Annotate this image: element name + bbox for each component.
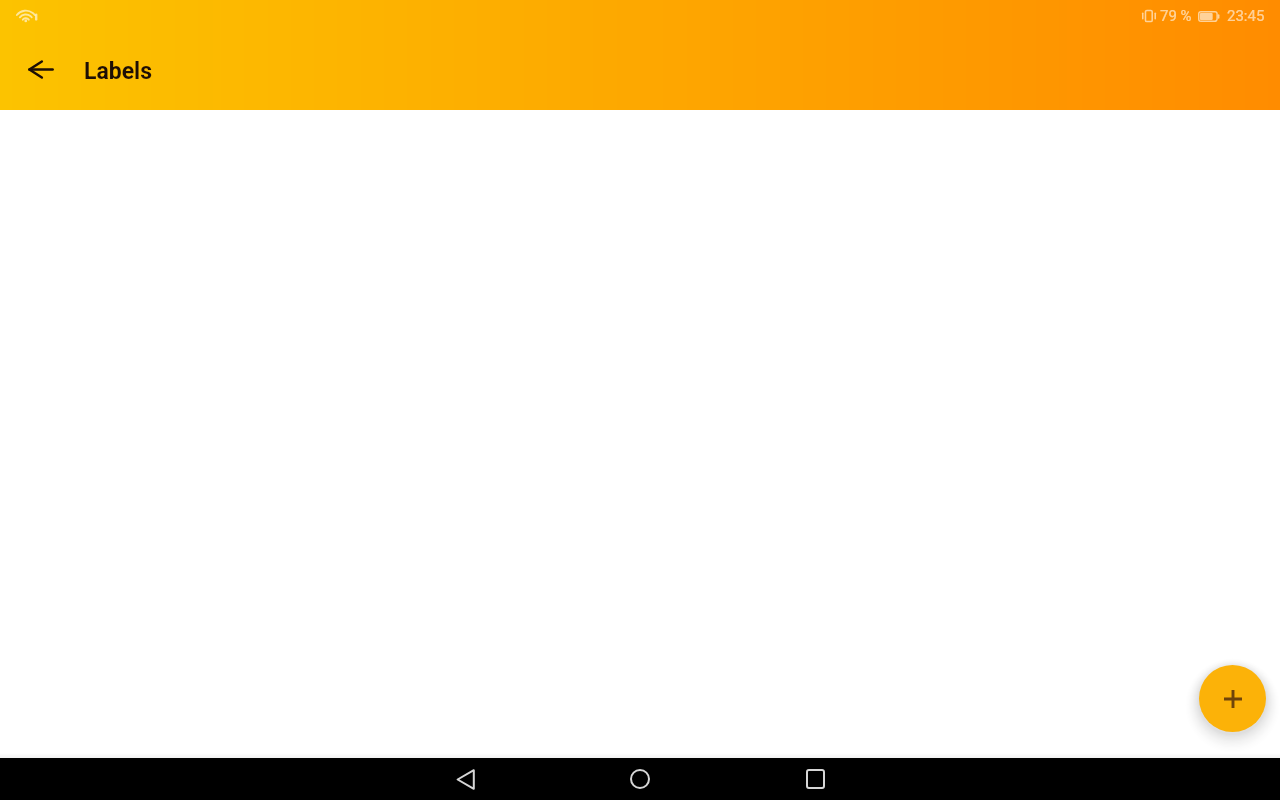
button[interactable]: Recent apps bbox=[791, 758, 839, 800]
button[interactable]: Back bbox=[441, 758, 489, 800]
staticText: 79 % bbox=[1160, 7, 1192, 25]
staticText: Labels bbox=[84, 58, 153, 85]
button[interactable]: Add label bbox=[1199, 665, 1266, 732]
button[interactable]: Home bbox=[616, 758, 664, 800]
staticText: 23:45 bbox=[1227, 7, 1265, 25]
button[interactable]: Navigate up bbox=[17, 45, 65, 93]
